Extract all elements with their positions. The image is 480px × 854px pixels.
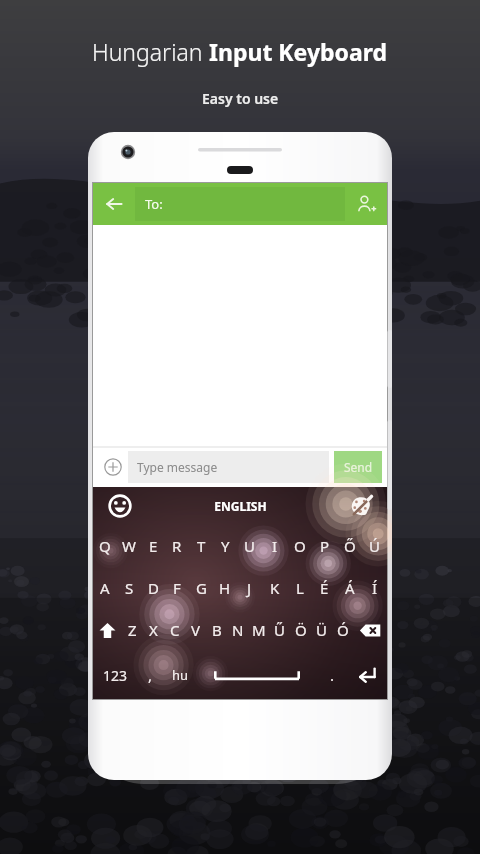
button[interactable]: To: bbox=[135, 187, 345, 221]
button[interactable]: O bbox=[287, 525, 312, 567]
staticText: V bbox=[191, 620, 201, 640]
staticText: Send bbox=[344, 459, 373, 475]
staticText: A bbox=[100, 578, 110, 598]
button[interactable]: Shift bbox=[93, 609, 121, 651]
staticText: K bbox=[270, 578, 280, 598]
button[interactable]: Q bbox=[93, 525, 117, 567]
button[interactable]: Type message bbox=[128, 451, 329, 483]
button[interactable]: hu bbox=[163, 651, 197, 699]
staticText: U bbox=[244, 536, 255, 556]
staticText: Ű bbox=[274, 620, 285, 640]
staticText: F bbox=[173, 578, 181, 598]
button[interactable]: N bbox=[227, 609, 248, 651]
staticText: Hungarian bbox=[92, 36, 209, 67]
staticText: D bbox=[148, 578, 159, 598]
button[interactable]: Back bbox=[93, 183, 135, 225]
staticText: C bbox=[170, 620, 180, 640]
staticText: Ő bbox=[344, 536, 356, 556]
staticText: N bbox=[232, 620, 244, 640]
button[interactable]: Send bbox=[334, 451, 382, 483]
button[interactable]: Emoji bbox=[107, 493, 133, 519]
button[interactable]: Z bbox=[121, 609, 143, 651]
button[interactable]: S bbox=[117, 567, 141, 609]
button[interactable]: P bbox=[312, 525, 337, 567]
button[interactable]: M bbox=[248, 609, 269, 651]
button[interactable]: E bbox=[141, 525, 165, 567]
button[interactable]: Enter bbox=[347, 651, 387, 699]
staticText: G bbox=[196, 578, 207, 598]
button[interactable]: Í bbox=[362, 567, 387, 609]
button[interactable]: W bbox=[117, 525, 141, 567]
button[interactable]: Á bbox=[337, 567, 362, 609]
staticText: R bbox=[172, 536, 182, 556]
button[interactable]: Space bbox=[197, 651, 317, 699]
button[interactable]: I bbox=[262, 525, 287, 567]
staticText: 123 bbox=[103, 666, 128, 685]
button[interactable]: D bbox=[141, 567, 165, 609]
staticText: Easy to use bbox=[202, 89, 279, 108]
button[interactable]: R bbox=[165, 525, 189, 567]
button[interactable]: B bbox=[206, 609, 227, 651]
staticText: M bbox=[252, 620, 266, 640]
staticText: Í bbox=[372, 578, 378, 598]
staticText: E bbox=[149, 536, 158, 556]
button[interactable]: K bbox=[262, 567, 287, 609]
staticText: hu bbox=[172, 666, 189, 684]
button[interactable]: Ő bbox=[337, 525, 362, 567]
button[interactable]: Backspace bbox=[353, 609, 387, 651]
button[interactable]: G bbox=[189, 567, 213, 609]
button[interactable]: , bbox=[137, 651, 163, 699]
staticText: Y bbox=[221, 536, 230, 556]
staticText: J bbox=[247, 578, 252, 598]
staticText: Á bbox=[345, 578, 355, 598]
staticText: Ú bbox=[369, 536, 380, 556]
button[interactable]: Theme bbox=[347, 492, 375, 520]
button[interactable]: A bbox=[93, 567, 117, 609]
button[interactable]: Ú bbox=[362, 525, 387, 567]
staticText: W bbox=[122, 536, 136, 556]
staticText: Z bbox=[128, 620, 137, 640]
button[interactable]: L bbox=[287, 567, 312, 609]
button[interactable]: Ö bbox=[290, 609, 311, 651]
button[interactable]: 123 bbox=[93, 651, 137, 699]
staticText: Ü bbox=[316, 620, 327, 640]
staticText: T bbox=[197, 536, 206, 556]
staticText: L bbox=[296, 578, 304, 598]
staticText: , bbox=[148, 665, 153, 685]
staticText: I bbox=[272, 536, 278, 556]
staticText: Q bbox=[99, 536, 111, 556]
button[interactable]: J bbox=[237, 567, 262, 609]
staticText: . bbox=[330, 665, 335, 685]
staticText: P bbox=[320, 536, 330, 556]
staticText: Input Keyboard bbox=[209, 36, 388, 67]
button[interactable]: X bbox=[143, 609, 164, 651]
button[interactable]: . bbox=[317, 651, 347, 699]
staticText: ENGLISH bbox=[214, 498, 267, 514]
button[interactable]: Ü bbox=[311, 609, 332, 651]
staticText: To: bbox=[145, 195, 163, 213]
button[interactable]: Add contact bbox=[345, 183, 387, 225]
staticText: É bbox=[320, 578, 329, 598]
button[interactable]: É bbox=[312, 567, 337, 609]
staticText: Ö bbox=[295, 620, 307, 640]
button[interactable]: C bbox=[164, 609, 185, 651]
button[interactable]: F bbox=[165, 567, 189, 609]
button[interactable]: Attach bbox=[98, 452, 128, 482]
button[interactable]: U bbox=[237, 525, 262, 567]
staticText: Type message bbox=[137, 459, 218, 475]
staticText: H bbox=[219, 578, 231, 598]
button[interactable]: T bbox=[189, 525, 213, 567]
staticText: S bbox=[125, 578, 134, 598]
button[interactable]: H bbox=[213, 567, 237, 609]
staticText: X bbox=[149, 620, 158, 640]
button[interactable]: V bbox=[185, 609, 206, 651]
button[interactable]: Ó bbox=[332, 609, 353, 651]
staticText: O bbox=[294, 536, 306, 556]
button[interactable]: Y bbox=[213, 525, 237, 567]
button[interactable]: Ű bbox=[269, 609, 290, 651]
staticText: Ó bbox=[337, 620, 349, 640]
staticText: B bbox=[212, 620, 222, 640]
